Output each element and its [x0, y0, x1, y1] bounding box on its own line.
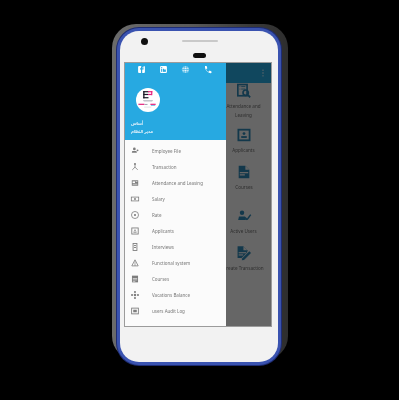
button[interactable]: Courses — [125, 271, 226, 287]
staticText: Salary — [164, 184, 178, 190]
staticText: Courses — [152, 276, 170, 282]
staticText: أساس — [131, 121, 144, 126]
staticText: Employee File — [152, 148, 182, 154]
staticText: Active Users — [230, 228, 257, 234]
button[interactable]: users Audit Log — [125, 303, 226, 319]
button[interactable]: Courses — [216, 164, 271, 208]
button[interactable]: Interviews — [125, 239, 226, 255]
button[interactable]: Rate — [125, 208, 216, 245]
button[interactable]: Website — [181, 65, 190, 74]
button[interactable]: Salary — [125, 191, 226, 207]
staticText: Attendance and Leaving — [226, 103, 261, 118]
button[interactable]: Vacations Balance — [125, 287, 226, 303]
button[interactable]: Functional system — [125, 255, 226, 271]
staticText: Courses — [235, 184, 253, 190]
staticText: Salary — [152, 196, 165, 202]
button[interactable]: Transaction — [125, 127, 216, 164]
button[interactable]: Transaction — [125, 159, 226, 175]
staticText: Attendance and Leasing — [152, 180, 203, 186]
button[interactable]: Applicants — [125, 223, 226, 239]
staticText: Create Transaction — [223, 265, 264, 271]
staticText: Rate — [152, 212, 162, 218]
button[interactable]: Employee File — [125, 143, 226, 159]
button[interactable]: Rate — [125, 207, 226, 223]
button[interactable]: Salary — [125, 164, 216, 208]
button[interactable]: Call — [203, 65, 212, 74]
button[interactable]: Attendance and Leasing — [125, 175, 226, 191]
staticText: مدير النظام — [131, 128, 153, 134]
button[interactable]: Facebook — [137, 65, 146, 74]
staticText: Vacations Balance — [151, 265, 190, 271]
button[interactable]: Create Transaction — [216, 245, 271, 289]
staticText: Employee File — [156, 103, 186, 109]
staticText: Applicants — [232, 147, 255, 153]
staticText: Transaction — [152, 164, 177, 170]
button[interactable]: LinkedIn — [159, 65, 168, 74]
staticText: Functional system — [152, 260, 191, 266]
button[interactable]: Employee File — [125, 83, 216, 127]
staticText: Applicants — [152, 228, 174, 234]
button[interactable]: Vacations Balance — [125, 245, 216, 289]
staticText: Transaction — [158, 147, 183, 153]
button[interactable]: Active Users — [216, 208, 271, 245]
staticText: Interviews — [152, 244, 174, 250]
staticText: Vacations Balance — [152, 292, 191, 298]
button[interactable]: More options — [258, 68, 268, 78]
staticText: users Audit Log — [152, 308, 185, 314]
staticText: Rate — [166, 228, 176, 234]
button[interactable]: Attendance and Leaving — [216, 83, 271, 127]
button[interactable]: Applicants — [216, 127, 271, 164]
